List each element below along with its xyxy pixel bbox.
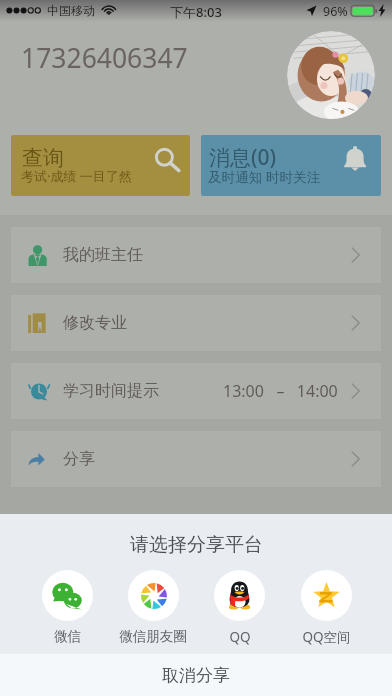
staticText: 消息(0) [209,143,277,172]
staticText: 13:00 – 14:00 [223,380,338,402]
button[interactable]: 查询 [11,135,190,196]
button[interactable]: Profile photo [287,31,375,119]
button[interactable]: 分享 [11,431,381,487]
staticText: 我的班主任 [63,245,143,265]
button[interactable]: QQ [196,570,283,646]
staticText: 下午8:03 [170,3,222,21]
staticText: 查询 [22,145,64,171]
other: Notifications [332,146,368,176]
other: Search [144,146,180,176]
button[interactable]: 消息(0) [201,135,381,196]
staticText: 及时通知 时时关注 [208,167,321,186]
staticText: QQ空间 [302,628,351,646]
staticText: 修改专业 [63,313,127,333]
staticText: 微信朋友圈 [119,628,187,645]
staticText: 取消分享 [162,665,230,686]
staticText: 17326406347 [21,40,188,76]
staticText: 学习时间提示 [63,381,159,401]
staticText: 请选择分享平台 [130,533,263,557]
button[interactable]: 我的班主任 [11,227,381,283]
button[interactable]: 微信朋友圈 [110,570,196,645]
staticText: 96% [323,3,348,20]
button[interactable]: 微信 [24,570,110,645]
button[interactable]: QQ空间 [283,570,370,646]
button[interactable]: 学习时间提示 [11,363,381,419]
staticText: 微信 [54,628,81,645]
button[interactable]: 修改专业 [11,295,381,351]
staticText: QQ [229,628,251,646]
staticText: 中国移动 [47,3,95,18]
button[interactable]: 取消分享 [0,654,392,696]
staticText: 分享 [63,449,95,469]
staticText: 考试·成绩 一目了然 [21,167,132,185]
